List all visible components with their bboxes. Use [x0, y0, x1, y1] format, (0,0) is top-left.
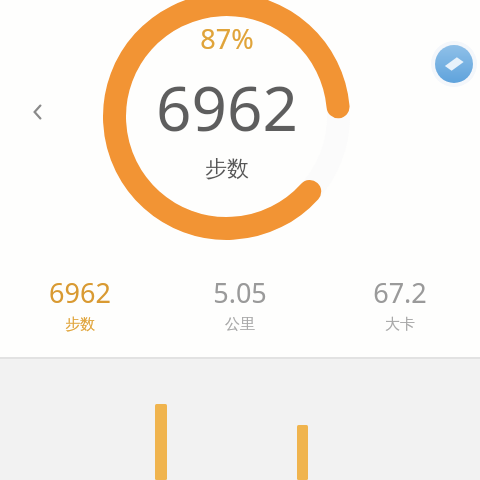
- staticText: 67.2: [373, 274, 427, 311]
- staticText: 6962: [156, 65, 298, 149]
- button[interactable]: 6962: [0, 272, 160, 336]
- staticText: 6962: [49, 274, 111, 311]
- button[interactable]: Back: [14, 88, 62, 136]
- staticText: 87%: [200, 20, 254, 57]
- button[interactable]: 67.2: [320, 272, 480, 336]
- staticText: 5.05: [213, 274, 267, 311]
- button[interactable]: Badge: [431, 41, 477, 87]
- button[interactable]: 5.05: [160, 272, 320, 336]
- staticText: 步数: [205, 155, 249, 183]
- staticText: 大卡: [385, 315, 415, 334]
- staticText: 步数: [65, 315, 95, 334]
- staticText: 公里: [225, 315, 255, 334]
